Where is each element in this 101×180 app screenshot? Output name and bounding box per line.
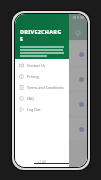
button[interactable]: FAQ <box>15 93 69 104</box>
button[interactable]: Terms and Conditions <box>15 82 69 93</box>
staticText: Terms and Conditions <box>27 85 64 90</box>
button[interactable] <box>15 43 87 65</box>
staticText: FAQ <box>27 96 34 101</box>
button[interactable]: Contact Us <box>15 60 69 71</box>
button[interactable]: Notifications <box>73 28 83 38</box>
button[interactable]: Pricing <box>15 71 69 82</box>
button[interactable] <box>15 93 87 115</box>
staticText: Contact Us <box>27 63 46 68</box>
button[interactable] <box>15 68 87 90</box>
staticText: Log Out <box>27 107 41 112</box>
staticText: Pricing <box>27 74 39 79</box>
staticText: DRIVE2CHARGE <box>20 28 64 42</box>
button[interactable] <box>15 118 87 140</box>
button[interactable]: Log Out <box>15 104 69 115</box>
staticText: v1.4.0 <box>15 160 69 164</box>
